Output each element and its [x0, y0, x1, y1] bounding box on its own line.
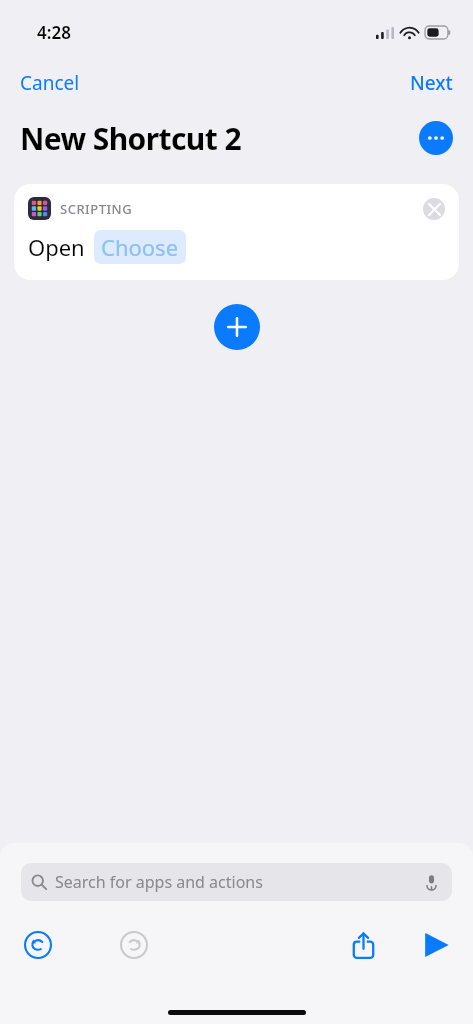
staticText: Open — [28, 232, 85, 262]
button[interactable]: Choose — [94, 230, 186, 264]
button[interactable]: SCRIPTING — [14, 184, 459, 280]
staticText: Next — [410, 70, 453, 96]
button[interactable]: Voice search — [420, 871, 442, 893]
button[interactable]: Run shortcut — [413, 923, 457, 967]
staticText: New Shortcut 2 — [20, 118, 241, 159]
button[interactable]: Search for apps and actions — [21, 863, 452, 901]
button[interactable]: More options — [419, 121, 453, 155]
button[interactable]: Remove action — [423, 198, 445, 220]
button[interactable]: Add action — [214, 304, 260, 350]
staticText: Cancel — [20, 70, 80, 96]
staticText: Choose — [101, 232, 179, 262]
staticText: 4:28 — [37, 21, 71, 44]
button[interactable]: Undo — [16, 923, 60, 967]
button[interactable]: Next — [390, 64, 473, 102]
staticText: Search for apps and actions — [55, 871, 263, 893]
button[interactable]: Redo — [112, 923, 156, 967]
button[interactable]: Share — [341, 923, 385, 967]
button[interactable]: Cancel — [0, 64, 100, 102]
staticText: SCRIPTING — [60, 200, 133, 218]
